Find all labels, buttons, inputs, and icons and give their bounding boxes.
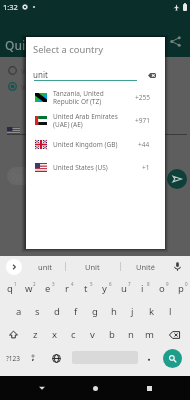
button[interactable]: j: [123, 300, 142, 323]
staticText: +255: [135, 93, 150, 102]
button[interactable]: n: [121, 323, 140, 346]
button[interactable]: [141, 346, 157, 370]
staticText: y: [102, 282, 107, 295]
staticText: r: [65, 282, 69, 295]
staticText: Select a country: [33, 43, 104, 56]
button[interactable]: Recent apps: [137, 376, 161, 400]
staticText: w: [25, 282, 33, 295]
button[interactable]: k: [142, 300, 161, 323]
button[interactable]: Type a message: [7, 167, 159, 185]
staticText: 6: [109, 281, 112, 287]
staticText: 5: [90, 281, 93, 287]
staticText: Unit: [85, 262, 100, 272]
button[interactable]: z: [26, 323, 45, 346]
button[interactable]: Share: [166, 32, 185, 51]
button[interactable]: United Arab Emirates (UAE) (AE): [26, 109, 165, 132]
button[interactable]: p: [171, 277, 190, 300]
staticText: m: [145, 328, 154, 341]
button[interactable]: Clear text: [145, 69, 159, 82]
staticText: 9: [166, 281, 169, 287]
button[interactable]: Voice input: [169, 256, 186, 277]
button[interactable]: f: [66, 300, 85, 323]
button[interactable]: [24, 346, 42, 370]
staticText: 2: [33, 281, 36, 287]
button[interactable]: United States (US): [26, 156, 165, 179]
button[interactable]: q: [0, 277, 19, 300]
button[interactable]: +1: [7, 125, 35, 136]
button[interactable]: d: [47, 300, 66, 323]
staticText: +1: [142, 163, 150, 172]
button[interactable]: Send message: [167, 169, 187, 189]
button[interactable]: Tanzania, United Republic Of (TZ): [26, 86, 165, 109]
button[interactable]: Home: [83, 376, 107, 400]
staticText: 8: [147, 281, 150, 287]
button[interactable]: h: [104, 300, 123, 323]
staticText: b: [109, 328, 115, 341]
staticText: i: [141, 282, 144, 295]
button[interactable]: u: [114, 277, 133, 300]
button[interactable]: g: [85, 300, 104, 323]
staticText: 3: [52, 281, 55, 287]
button[interactable]: Back: [30, 376, 54, 400]
button[interactable]: unit: [26, 256, 64, 277]
staticText: e: [45, 282, 51, 295]
staticText: with network: [21, 65, 71, 76]
button[interactable]: b: [102, 323, 121, 346]
button[interactable]: without network: [0, 78, 190, 94]
staticText: QuickSMS: [5, 37, 62, 53]
staticText: t: [84, 282, 88, 295]
staticText: c: [71, 328, 76, 341]
staticText: l: [169, 305, 172, 318]
button[interactable]: Search: [163, 349, 182, 368]
button[interactable]: Backspace: [159, 323, 190, 346]
button[interactable]: o: [152, 277, 171, 300]
staticText: z: [33, 328, 38, 341]
staticText: g: [92, 305, 98, 318]
staticText: a: [16, 305, 22, 318]
staticText: p: [178, 282, 184, 295]
staticText: unit: [33, 69, 48, 80]
button[interactable]: m: [140, 323, 159, 346]
staticText: k: [149, 305, 155, 318]
staticText: Type a message: [11, 171, 72, 182]
staticText: q: [7, 282, 13, 295]
staticText: s: [35, 305, 40, 318]
button[interactable]: Unit: [73, 256, 111, 277]
button[interactable]: t: [76, 277, 95, 300]
button[interactable]: v: [83, 323, 102, 346]
button[interactable]: Change language: [47, 346, 65, 370]
button[interactable]: United Kingdom (GB): [26, 133, 165, 156]
button[interactable]: x: [45, 323, 64, 346]
staticText: United Arab Emirates (UAE) (AE): [53, 112, 135, 129]
button[interactable]: More suggestions: [6, 259, 22, 275]
button[interactable]: ?123: [0, 346, 26, 370]
button[interactable]: r: [57, 277, 76, 300]
staticText: v: [90, 328, 95, 341]
button[interactable]: w: [19, 277, 38, 300]
button[interactable]: e: [38, 277, 57, 300]
button[interactable]: a: [10, 300, 28, 323]
button[interactable]: Shift: [0, 323, 26, 346]
staticText: h: [111, 305, 117, 318]
button[interactable]: y: [95, 277, 114, 300]
button[interactable]: l: [161, 300, 180, 323]
staticText: +971: [135, 116, 150, 125]
button[interactable]: Unité: [126, 256, 164, 277]
staticText: Unité: [136, 262, 155, 272]
staticText: United States (US): [53, 163, 142, 172]
staticText: United Kingdom (GB): [53, 140, 138, 149]
staticText: +44: [138, 140, 150, 149]
button[interactable]: s: [28, 300, 47, 323]
staticText: 4: [71, 281, 74, 287]
button[interactable]: with network: [0, 62, 190, 78]
staticText: 1: [14, 281, 17, 287]
staticText: +1: [25, 125, 35, 136]
staticText: 0: [185, 281, 188, 287]
staticText: u: [121, 282, 127, 295]
button[interactable]: c: [64, 323, 83, 346]
button[interactable]: i: [133, 277, 152, 300]
staticText: o: [159, 282, 165, 295]
staticText: without network: [21, 81, 83, 92]
staticText: Tanzania, United Republic Of (TZ): [53, 89, 135, 106]
